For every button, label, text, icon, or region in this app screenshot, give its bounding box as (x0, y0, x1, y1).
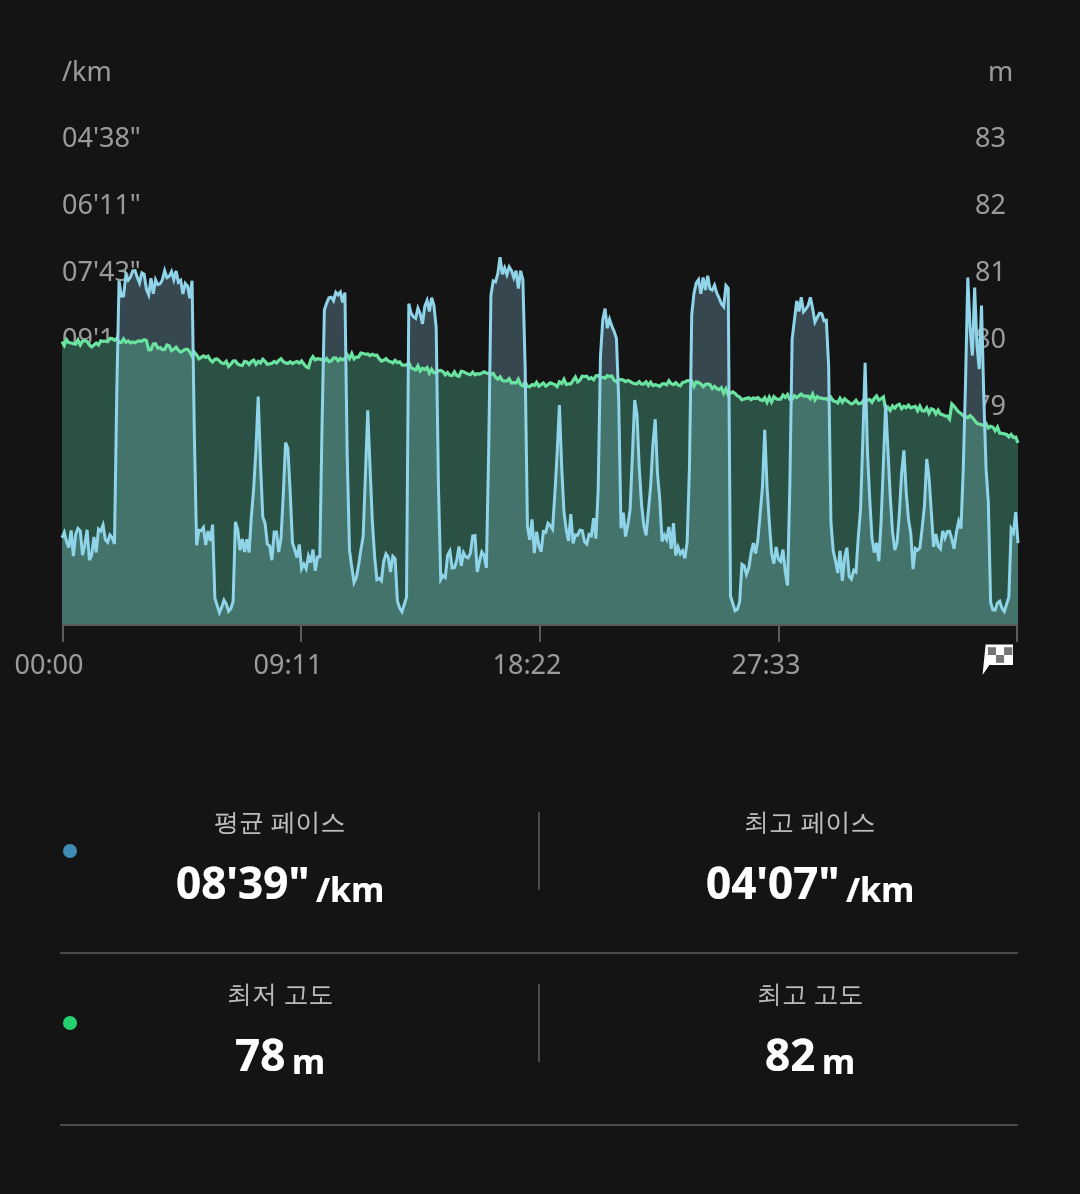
staticText: 27:33 (731, 645, 801, 682)
staticText: 13'54" (62, 520, 141, 557)
staticText: 77 (975, 520, 1006, 557)
staticText: 09'16" (62, 319, 141, 356)
staticText: /km (316, 866, 385, 912)
button[interactable]: 최저 고도 (20, 954, 540, 1084)
button[interactable]: 최고 고도 (540, 954, 1080, 1084)
staticText: 10'49" (62, 386, 141, 423)
staticText: 82 (975, 185, 1006, 222)
staticText: 78 (975, 453, 1006, 490)
staticText: 08'39" (176, 852, 310, 912)
staticText: m (988, 52, 1014, 89)
staticText: 18:22 (492, 645, 562, 682)
staticText: 79 (975, 386, 1006, 423)
staticText: 12'22" (62, 453, 141, 490)
staticText: 최고 고도 (757, 976, 864, 1010)
staticText: 04'07" (706, 852, 840, 912)
staticText: m (822, 1038, 856, 1084)
staticText: 평균 페이스 (214, 804, 346, 838)
staticText: m (292, 1038, 326, 1084)
staticText: 최고 페이스 (744, 804, 876, 838)
staticText: 83 (975, 118, 1006, 155)
staticText: 06'11" (62, 185, 141, 222)
staticText: /km (62, 52, 112, 89)
button[interactable]: 평균 페이스 (20, 782, 540, 912)
staticText: 09:11 (253, 645, 323, 682)
staticText: 78 (235, 1024, 286, 1084)
button[interactable]: 최고 페이스 (540, 782, 1080, 912)
staticText: 81 (975, 252, 1006, 289)
staticText: 00:00 (14, 645, 84, 682)
staticText: 80 (975, 319, 1006, 356)
staticText: /km (846, 866, 915, 912)
staticText: 04'38" (62, 118, 141, 155)
button[interactable]: Finish (978, 640, 1016, 678)
staticText: 82 (765, 1024, 816, 1084)
staticText: 07'43" (62, 252, 141, 289)
staticText: 최저 고도 (227, 976, 334, 1010)
